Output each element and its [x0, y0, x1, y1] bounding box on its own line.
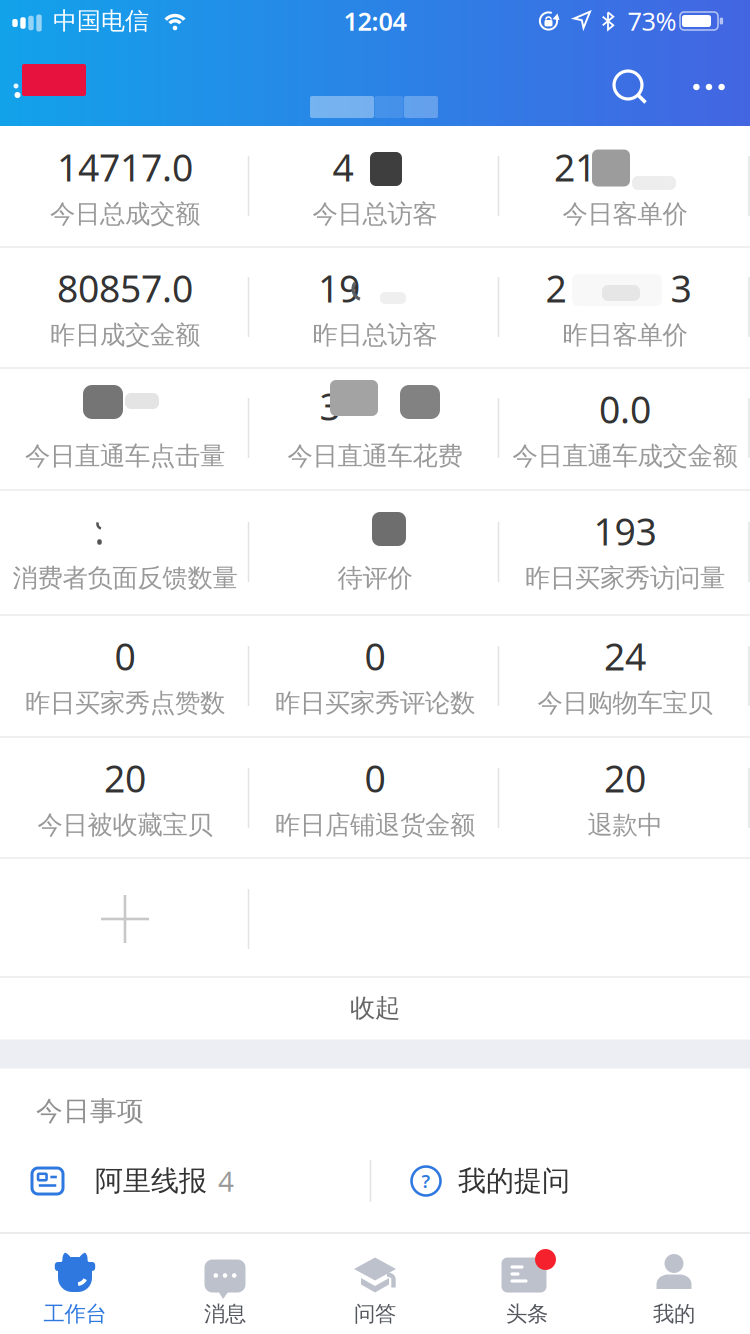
- staticText: 3: [670, 263, 691, 313]
- button[interactable]: 工作台: [1, 1238, 149, 1332]
- button[interactable]: 20: [503, 737, 747, 853]
- staticText: 昨日买家秀访问量: [525, 562, 725, 593]
- staticText: 今日客单价: [562, 198, 687, 229]
- staticText: 消息: [204, 1301, 246, 1327]
- staticText: 0: [114, 631, 135, 681]
- staticText: 待评价: [337, 562, 412, 593]
- staticText: 20: [104, 753, 146, 803]
- staticText: 193: [593, 506, 656, 556]
- staticText: ?: [422, 1168, 431, 1193]
- button[interactable]: Add metric: [101, 895, 149, 943]
- staticText: 昨日买家秀点赞数: [25, 687, 225, 718]
- button[interactable]: 24: [503, 615, 747, 731]
- staticText: 73%: [627, 4, 676, 38]
- button[interactable]: 0: [3, 615, 247, 731]
- button[interactable]: 今日直通车花费: [253, 368, 497, 484]
- staticText: 退款中: [587, 809, 662, 840]
- button[interactable]: 今日总访客: [253, 126, 497, 242]
- button[interactable]: ?: [400, 1151, 640, 1211]
- staticText: 头条: [506, 1301, 548, 1327]
- button[interactable]: 0: [253, 615, 497, 731]
- staticText: 4: [332, 142, 353, 192]
- staticText: 今日直通车点击量: [25, 440, 225, 471]
- button[interactable]: More: [679, 67, 739, 107]
- button[interactable]: 今日直通车点击量: [3, 368, 247, 484]
- button[interactable]: 80857.0: [3, 247, 247, 363]
- staticText: 收起: [350, 992, 400, 1023]
- staticText: 24: [604, 631, 646, 681]
- staticText: 今日被收藏宝贝: [37, 809, 212, 840]
- staticText: 21: [554, 142, 596, 192]
- button[interactable]: 20: [3, 737, 247, 853]
- staticText: 0: [364, 631, 385, 681]
- button[interactable]: 头条: [453, 1238, 601, 1332]
- staticText: 今日总访客: [312, 198, 437, 229]
- staticText: 今日直通车成交金额: [512, 440, 737, 471]
- staticText: 今日购物车宝贝: [537, 687, 712, 718]
- staticText: 20: [604, 753, 646, 803]
- button[interactable]: 14717.0: [3, 126, 247, 242]
- button[interactable]: 193: [503, 490, 747, 606]
- staticText: 今日直通车花费: [287, 440, 462, 471]
- button[interactable]: 我的: [600, 1238, 748, 1332]
- staticText: 昨日店铺退货金额: [275, 809, 475, 840]
- button[interactable]: 阿里线报: [10, 1151, 340, 1211]
- staticText: 我的: [653, 1301, 695, 1327]
- staticText: 消费者负面反馈数量: [12, 562, 237, 593]
- button[interactable]: 今日客单价: [503, 126, 747, 242]
- staticText: 昨日客单价: [562, 319, 687, 350]
- button[interactable]: 待评价: [253, 490, 497, 606]
- staticText: 昨日总访客: [312, 319, 437, 350]
- staticText: 2: [545, 263, 566, 313]
- button[interactable]: 0.0: [503, 368, 747, 484]
- staticText: 3: [319, 381, 340, 431]
- button[interactable]: 收起: [0, 977, 750, 1039]
- staticText: 昨日成交金额: [50, 319, 200, 350]
- staticText: 80857.0: [57, 263, 193, 313]
- staticText: 0: [364, 753, 385, 803]
- button[interactable]: 昨日总访客: [253, 247, 497, 363]
- staticText: 14717.0: [57, 142, 193, 192]
- staticText: 昨日买家秀评论数: [275, 687, 475, 718]
- staticText: 0.0: [599, 384, 651, 434]
- button[interactable]: 0: [253, 737, 497, 853]
- staticText: 中国电信: [53, 6, 149, 36]
- staticText: 我的提问: [458, 1164, 570, 1198]
- staticText: 问答: [354, 1301, 396, 1327]
- staticText: 阿里线报: [95, 1164, 207, 1198]
- button[interactable]: Search: [600, 57, 660, 117]
- button[interactable]: 问答: [301, 1238, 449, 1332]
- staticText: 工作台: [43, 1301, 106, 1327]
- button[interactable]: 消费者负面反馈数量: [3, 490, 247, 606]
- staticText: 12:04: [343, 4, 406, 38]
- staticText: 今日总成交额: [50, 198, 200, 229]
- button[interactable]: 昨日客单价: [503, 247, 747, 363]
- staticText: 今日事项: [36, 1095, 144, 1127]
- staticText: 19: [318, 263, 360, 313]
- button[interactable]: 消息: [151, 1238, 299, 1332]
- staticText: 4: [218, 1162, 234, 1200]
